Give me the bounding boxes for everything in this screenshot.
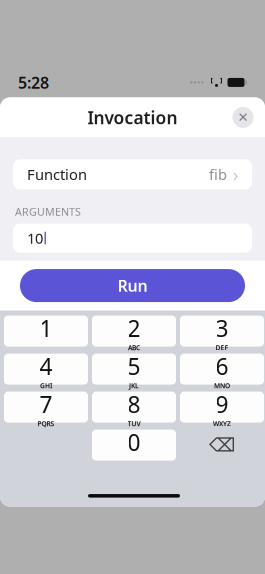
button[interactable]: 0 (92, 430, 176, 461)
staticText: 5:28 (18, 72, 49, 93)
staticText: 2 (127, 313, 140, 343)
button[interactable]: 3 (180, 316, 264, 347)
staticText: PQRS (37, 419, 54, 428)
button[interactable]: Delete (180, 430, 264, 461)
button[interactable]: Function (13, 159, 252, 189)
staticText: ARGUMENTS (15, 204, 81, 219)
staticText: DEF (215, 343, 228, 352)
staticText: WXYZ (213, 419, 231, 428)
staticText: 5 (127, 351, 140, 381)
staticText: MNO (214, 381, 230, 390)
staticText: 3 (215, 313, 228, 343)
button[interactable]: 4 (4, 354, 88, 385)
button[interactable]: 6 (180, 354, 264, 385)
staticText: JKL (129, 381, 139, 390)
staticText: ABC (128, 343, 140, 352)
button[interactable]: 8 (92, 392, 176, 423)
button[interactable]: 9 (180, 392, 264, 423)
staticText: 1 (39, 313, 52, 343)
staticText: Function (27, 165, 87, 184)
staticText: ⌫ (209, 434, 235, 456)
button[interactable]: Close (226, 100, 260, 134)
staticText: 0 (127, 427, 140, 457)
staticText: fib (209, 165, 227, 184)
staticText: 9 (215, 389, 228, 419)
button[interactable]: 7 (4, 392, 88, 423)
staticText (45, 343, 47, 352)
button[interactable]: Run (20, 269, 245, 302)
staticText: 7 (39, 389, 52, 419)
staticText: › (233, 163, 238, 186)
staticText: 6 (215, 351, 228, 381)
button[interactable]: 5 (92, 354, 176, 385)
staticText (133, 457, 135, 466)
staticText: 8 (127, 389, 140, 419)
staticText: Run (117, 275, 147, 296)
staticText: 4 (39, 351, 52, 381)
staticText: GHI (40, 381, 52, 390)
staticText: Invocation (87, 106, 177, 129)
button[interactable]: 1 (4, 316, 88, 347)
staticText: 10 (27, 228, 43, 248)
staticText: ✕ (237, 110, 248, 125)
button[interactable]: 2 (92, 316, 176, 347)
staticText: TUV (127, 419, 140, 428)
